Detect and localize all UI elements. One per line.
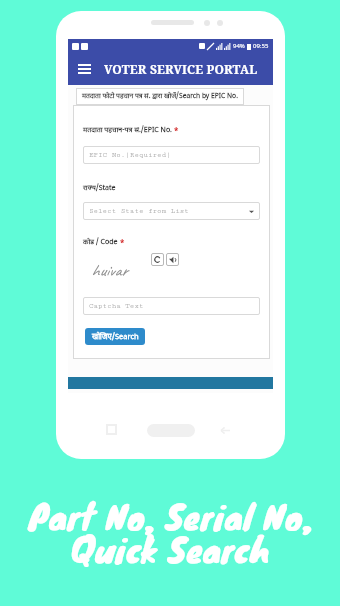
staticText: Quick Search xyxy=(70,523,270,574)
button[interactable]: EPIC No.(Required) xyxy=(83,146,260,164)
button[interactable]: Open navigation menu xyxy=(68,53,100,85)
staticText: Captcha Text xyxy=(89,302,144,310)
staticText: huivar xyxy=(91,260,128,281)
button[interactable]: खोजिए/Search xyxy=(85,328,145,345)
button[interactable]: Refresh captcha xyxy=(151,253,164,266)
staticText: * xyxy=(174,125,179,136)
staticText: Select State from List xyxy=(89,207,189,215)
button[interactable]: Select State from List xyxy=(83,202,260,220)
button[interactable]: Recent apps xyxy=(106,424,117,435)
staticText: खोजिए/Search xyxy=(92,332,139,342)
staticText: कोड / Code xyxy=(83,238,120,247)
staticText: राज्य/State xyxy=(83,184,116,193)
button[interactable]: Captcha Text xyxy=(83,297,260,315)
staticText: EPIC No.(Required) xyxy=(89,151,171,159)
button[interactable]: Play captcha audio xyxy=(166,253,179,266)
staticText: * xyxy=(120,237,125,248)
staticText: Part No, Serial No, xyxy=(28,490,313,541)
staticText: 09:55 xyxy=(253,42,269,50)
button[interactable]: मतदाता फोटो पहचान पत्र सं. द्वारा खोजें/… xyxy=(76,88,244,105)
staticText: VOTER SERVICE PORTAL xyxy=(104,61,258,77)
staticText: 94% xyxy=(233,42,245,50)
button[interactable]: Home xyxy=(147,424,195,437)
button[interactable]: Back xyxy=(220,425,231,436)
staticText: मतदाता फोटो पहचान पत्र सं. द्वारा खोजें/… xyxy=(82,92,238,101)
staticText: मतदाता पहचान-पत्र सं./EPIC No. xyxy=(83,126,174,135)
